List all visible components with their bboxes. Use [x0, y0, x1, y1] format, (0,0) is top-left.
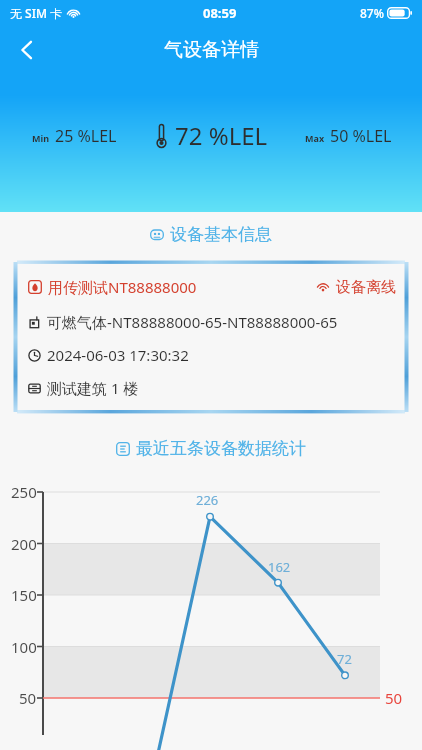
staticText: Max	[305, 132, 325, 144]
staticText: 设备离线	[336, 278, 396, 297]
staticText: 可燃气体-NT88888000-65-NT88888000-65	[47, 312, 338, 332]
staticText: 150	[11, 585, 37, 605]
button[interactable]: 可燃气体-NT88888000-65-NT88888000-65	[28, 312, 396, 332]
staticText: 72 %LEL	[175, 119, 268, 152]
staticText: 162	[268, 558, 291, 576]
staticText: 无 SIM 卡	[10, 5, 63, 21]
staticText: 测试建筑 1 楼	[47, 378, 139, 398]
staticText: 200	[11, 534, 37, 554]
button[interactable]: 用传测试NT88888000	[28, 277, 396, 297]
staticText: 50 %LEL	[330, 125, 392, 147]
staticText: 100	[11, 637, 37, 657]
staticText: 250	[11, 482, 37, 502]
staticText: 226	[196, 491, 219, 509]
button[interactable]: Back	[5, 28, 49, 72]
button[interactable]: 测试建筑 1 楼	[28, 378, 396, 398]
button[interactable]: 最近五条设备数据统计	[0, 438, 422, 459]
staticText: 设备基本信息	[170, 224, 272, 245]
staticText: 最近五条设备数据统计	[136, 438, 306, 459]
staticText: 气设备详情	[164, 38, 259, 62]
button[interactable]: 2024-06-03 17:30:32	[28, 345, 396, 365]
staticText: 08:59	[203, 4, 237, 22]
staticText: 87%	[360, 5, 384, 21]
button[interactable]: 设备基本信息	[0, 224, 422, 245]
staticText: 72	[337, 650, 352, 668]
staticText: 50	[19, 688, 37, 708]
staticText: 2024-06-03 17:30:32	[47, 345, 189, 365]
staticText: 50	[385, 688, 403, 708]
staticText: Min	[32, 132, 50, 144]
staticText: 用传测试NT88888000	[48, 277, 197, 297]
staticText: 25 %LEL	[55, 125, 117, 147]
